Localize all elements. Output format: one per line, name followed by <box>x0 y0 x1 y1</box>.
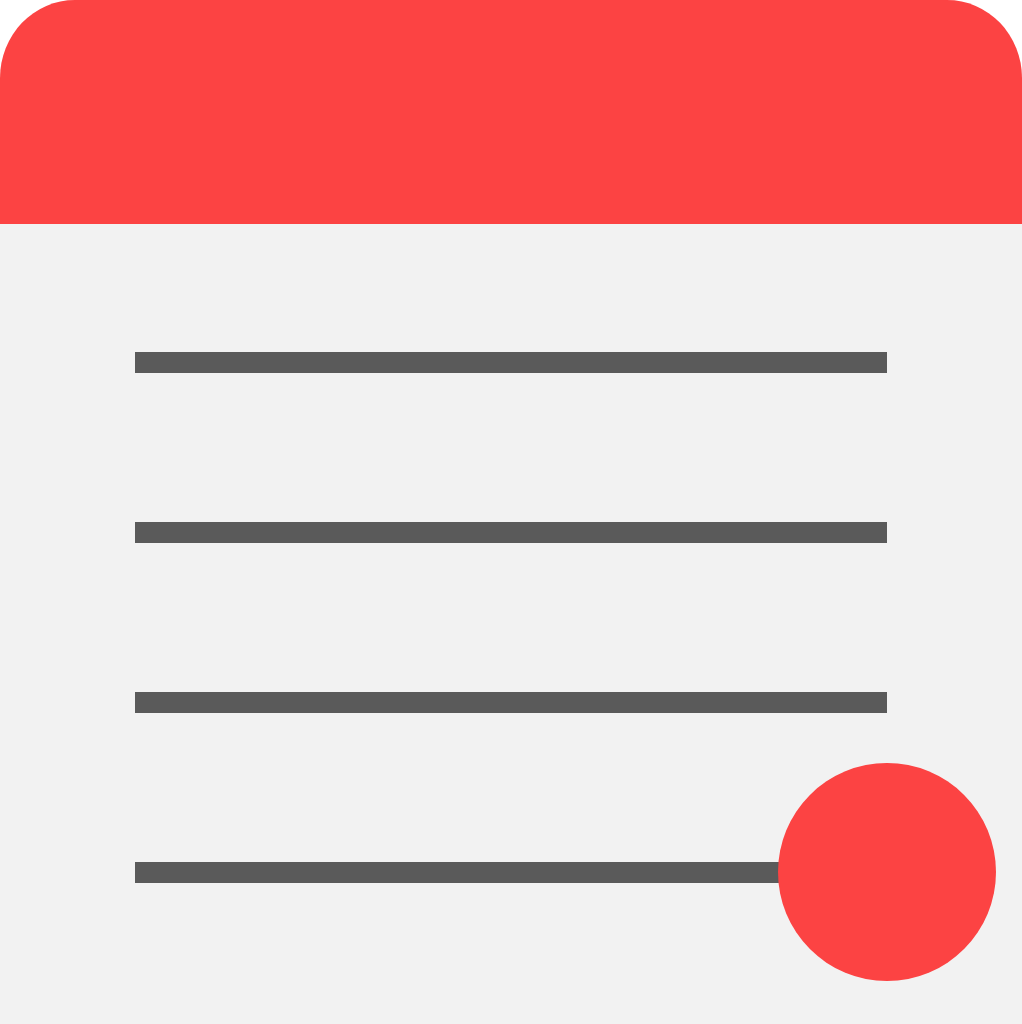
button[interactable]: Top app bar <box>0 0 1022 224</box>
button[interactable]: List item <box>135 862 887 883</box>
button[interactable]: Add <box>778 763 996 981</box>
